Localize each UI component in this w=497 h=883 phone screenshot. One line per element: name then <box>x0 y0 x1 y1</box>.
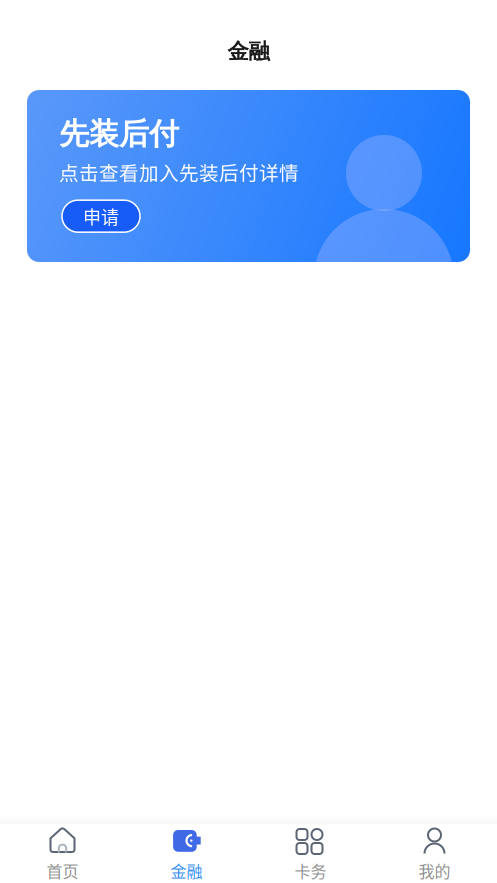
staticText: 卡务 <box>294 859 326 882</box>
staticText: 我的 <box>418 859 450 882</box>
staticText: 先装后付 <box>59 115 179 153</box>
staticText: 金融 <box>170 859 202 882</box>
button[interactable]: 先装后付 <box>27 90 470 262</box>
staticText: 金融 <box>227 38 269 65</box>
staticText: 点击查看加入先装后付详情 <box>59 158 299 186</box>
staticText: 申请 <box>83 203 119 229</box>
button[interactable]: 首页 <box>0 819 124 883</box>
button[interactable]: 我的 <box>372 819 496 883</box>
staticText: 首页 <box>46 859 78 882</box>
button[interactable]: 金融 <box>124 819 248 883</box>
button[interactable]: 卡务 <box>248 819 372 883</box>
